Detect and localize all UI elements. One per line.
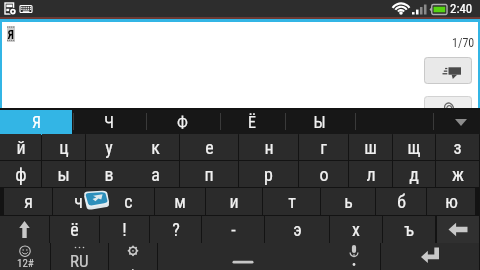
staticText: н — [264, 137, 274, 158]
staticText: 2:40 — [450, 1, 473, 16]
button[interactable]: п — [180, 161, 238, 187]
staticText: Я — [32, 113, 41, 132]
button[interactable]: Settings — [109, 243, 157, 270]
staticText: 12# — [17, 257, 34, 270]
button[interactable]: щ — [393, 134, 435, 160]
button[interactable]: й — [0, 134, 41, 160]
button[interactable]: к — [131, 134, 179, 160]
button[interactable]: л — [349, 161, 392, 187]
staticText: ё — [70, 219, 79, 240]
button[interactable]: в — [86, 161, 131, 187]
button[interactable]: о — [299, 161, 348, 187]
button[interactable]: Symbols — [0, 243, 50, 270]
staticText: л — [366, 164, 376, 185]
button[interactable]: ф — [0, 161, 41, 187]
button[interactable]: Attach — [424, 96, 472, 108]
staticText: р — [264, 164, 273, 185]
staticText: в — [104, 164, 114, 185]
button[interactable]: ю — [427, 188, 475, 215]
button[interactable]: я — [4, 188, 52, 215]
staticText: д — [409, 164, 419, 185]
button[interactable]: Language — [51, 243, 108, 270]
button[interactable]: ц — [42, 134, 85, 160]
button[interactable]: - — [202, 216, 264, 243]
staticText: ш — [364, 137, 377, 158]
staticText: а — [151, 164, 160, 185]
staticText: г — [320, 137, 327, 158]
staticText: о — [319, 164, 329, 185]
button[interactable]: х — [330, 216, 382, 243]
staticText: Ё — [248, 113, 256, 132]
button[interactable]: и — [206, 188, 262, 215]
button[interactable]: е — [180, 134, 238, 160]
staticText: Ч — [104, 113, 114, 132]
button[interactable]: Shift — [0, 216, 49, 243]
button[interactable]: Send message — [424, 57, 472, 84]
staticText: Ы — [313, 113, 326, 132]
staticText: я — [24, 191, 33, 212]
staticText: ч — [74, 191, 83, 212]
staticText: б — [397, 191, 406, 212]
button[interactable]: ы — [42, 161, 85, 187]
button[interactable]: з — [436, 134, 479, 160]
button[interactable]: г — [299, 134, 348, 160]
staticText: ю — [445, 191, 458, 212]
staticText: ф — [15, 164, 27, 185]
button[interactable]: Space — [158, 243, 328, 270]
button[interactable]: Я — [0, 110, 72, 135]
staticText: м — [174, 191, 186, 212]
staticText: у — [105, 137, 113, 158]
button[interactable]: с — [103, 188, 154, 215]
button[interactable]: б — [376, 188, 426, 215]
staticText: т — [288, 191, 296, 212]
button[interactable]: ? — [150, 216, 201, 243]
button[interactable]: ж — [436, 161, 479, 187]
button[interactable]: Ф — [146, 110, 219, 135]
button[interactable]: ч — [53, 188, 103, 215]
button[interactable]: т — [263, 188, 320, 215]
button[interactable]: д — [393, 161, 435, 187]
staticText: ъ — [404, 219, 414, 240]
staticText: RU — [70, 251, 89, 270]
button[interactable]: р — [239, 161, 298, 187]
staticText: и — [229, 191, 239, 212]
button[interactable]: Voice input — [328, 243, 380, 270]
button[interactable]: ! — [100, 216, 149, 243]
button[interactable]: ш — [349, 134, 392, 160]
staticText: ! — [122, 219, 127, 240]
button[interactable]: Ё — [220, 110, 284, 135]
button[interactable]: Ч — [73, 110, 145, 135]
staticText: Я — [7, 28, 15, 42]
staticText: щ — [407, 137, 421, 158]
staticText: 1/70 — [452, 36, 475, 50]
staticText: ы — [57, 164, 70, 185]
button[interactable]: ь — [321, 188, 375, 215]
staticText: ? — [172, 219, 180, 240]
button[interactable]: ё — [50, 216, 99, 243]
button[interactable]: э — [265, 216, 329, 243]
staticText: х — [352, 219, 360, 240]
staticText: ж — [452, 164, 464, 185]
staticText: с — [124, 191, 133, 212]
button[interactable]: Ы — [285, 110, 354, 135]
staticText: к — [151, 137, 160, 158]
staticText: е — [205, 137, 214, 158]
staticText: з — [453, 137, 462, 158]
staticText: ц — [59, 137, 69, 158]
button[interactable]: Backspace — [437, 216, 479, 243]
staticText: ь — [344, 191, 353, 212]
button[interactable]: н — [239, 134, 298, 160]
staticText: э — [293, 219, 302, 240]
button[interactable]: ъ — [383, 216, 435, 243]
staticText: й — [16, 137, 26, 158]
button[interactable]: а — [131, 161, 179, 187]
button[interactable]: у — [86, 134, 131, 160]
staticText: Ф — [177, 113, 188, 132]
staticText: п — [204, 164, 214, 185]
button[interactable]: Enter — [381, 243, 479, 270]
staticText: - — [231, 219, 236, 240]
staticText: , — [131, 256, 135, 270]
button[interactable]: м — [155, 188, 205, 215]
